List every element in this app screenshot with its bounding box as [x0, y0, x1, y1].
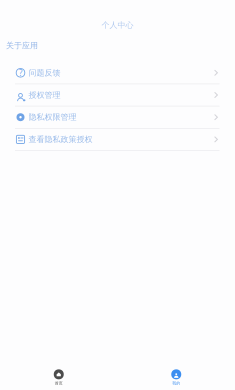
staticText: 隐私权限管理 — [29, 112, 77, 122]
staticText: 个人中心 — [101, 20, 133, 30]
staticText: 查看隐私政策授权 — [29, 134, 93, 144]
button[interactable]: 我的 — [149, 369, 203, 385]
button[interactable]: 查看隐私政策授权 — [0, 129, 235, 151]
staticText: 我的 — [172, 381, 180, 386]
staticText: 问题反馈 — [29, 68, 61, 78]
staticText: ? — [19, 67, 22, 78]
staticText: 授权管理 — [29, 90, 61, 100]
staticText: 首页 — [55, 381, 63, 386]
button[interactable]: ? — [0, 62, 235, 84]
button[interactable]: 隐私权限管理 — [0, 106, 235, 129]
staticText: 关于应用 — [6, 41, 38, 50]
button[interactable]: 首页 — [32, 369, 86, 385]
button[interactable]: 授权管理 — [0, 84, 235, 106]
